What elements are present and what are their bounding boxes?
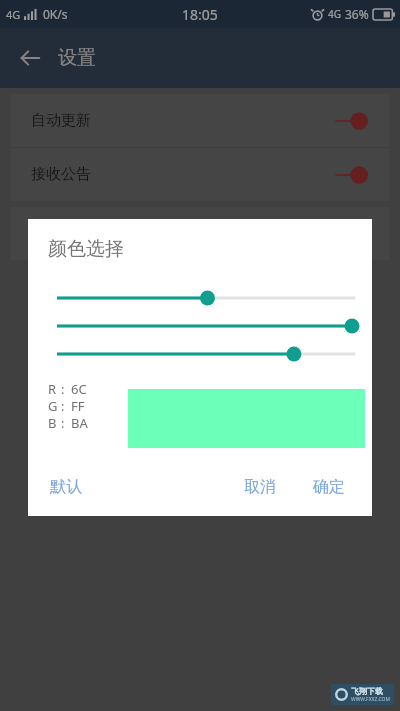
button[interactable]: Color channel slider (57, 343, 355, 365)
staticText: : (61, 397, 65, 414)
staticText: R (48, 380, 61, 397)
button[interactable]: Color channel slider (57, 287, 355, 309)
staticText: B (48, 414, 61, 431)
staticText: FF (71, 397, 85, 414)
button[interactable]: 默认 (42, 469, 90, 505)
staticText: 分享软件 (31, 224, 91, 243)
staticText: : (61, 414, 65, 431)
staticText: 接收公告 (31, 165, 91, 184)
staticText: 4G (328, 7, 341, 21)
staticText: 自动更新 (31, 111, 91, 130)
staticText: 6C (71, 380, 87, 397)
staticText: 飞翔下载 (351, 686, 383, 696)
button[interactable]: 取消 (236, 469, 284, 505)
staticText: G (48, 397, 61, 414)
staticText: 0K/s (43, 6, 68, 22)
button[interactable]: 分享软件 (11, 207, 389, 260)
button[interactable]: Back (8, 36, 52, 80)
staticText: : (61, 380, 65, 397)
button[interactable]: 自动更新 (11, 94, 389, 147)
staticText: 36% (345, 6, 369, 22)
staticText: 取消 (244, 477, 276, 497)
button[interactable]: 确定 (305, 469, 353, 505)
staticText: 设置 (58, 46, 96, 70)
staticText: WWW.FXXZ.COM (351, 696, 390, 703)
staticText: 18:05 (182, 5, 218, 24)
button[interactable]: 接收公告 (11, 148, 389, 201)
button[interactable]: Color channel slider (57, 315, 355, 337)
staticText: BA (71, 414, 88, 431)
staticText: 颜色选择 (48, 237, 124, 261)
staticText: 确定 (313, 477, 345, 497)
staticText: 默认 (50, 477, 82, 497)
staticText: 4G (6, 7, 21, 22)
